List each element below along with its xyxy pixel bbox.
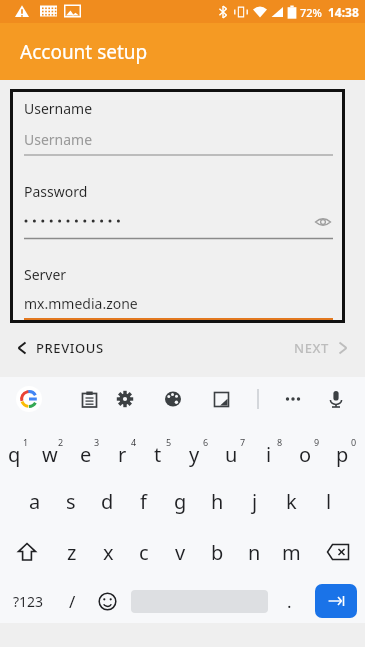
staticText: o xyxy=(299,441,312,468)
staticText: u xyxy=(225,441,238,468)
staticText: 8 xyxy=(277,436,283,448)
button[interactable]: NEXT xyxy=(290,333,353,363)
button[interactable]: y xyxy=(180,427,217,473)
staticText: z xyxy=(67,539,77,566)
staticText: c xyxy=(139,539,149,566)
staticText: f xyxy=(140,488,147,515)
staticText: q xyxy=(8,441,21,468)
staticText: 0 xyxy=(351,436,357,448)
staticText: PREVIOUS xyxy=(36,339,104,357)
staticText: d xyxy=(101,488,114,515)
button[interactable]: t xyxy=(144,427,180,473)
button[interactable]: n xyxy=(236,529,273,575)
staticText: v xyxy=(175,539,186,566)
button[interactable]: Show password xyxy=(313,213,333,233)
staticText: 2 xyxy=(58,436,64,448)
button[interactable]: d xyxy=(89,478,125,524)
staticText: Username xyxy=(24,99,93,118)
staticText: w xyxy=(42,441,58,468)
button[interactable]: l xyxy=(310,478,347,524)
button[interactable]: p xyxy=(328,427,365,473)
button[interactable]: b xyxy=(199,529,236,575)
staticText: l xyxy=(326,488,332,515)
button[interactable]: Shift xyxy=(0,529,54,575)
button[interactable]: Enter xyxy=(315,584,357,618)
button[interactable]: f xyxy=(125,478,162,524)
button[interactable]: u xyxy=(217,427,254,473)
button[interactable]: . xyxy=(273,579,306,623)
button[interactable]: s xyxy=(53,478,89,524)
button[interactable]: Themes xyxy=(160,386,186,412)
staticText: i xyxy=(266,441,272,468)
button[interactable]: PREVIOUS xyxy=(12,333,108,363)
button[interactable]: i xyxy=(254,427,291,473)
staticText: x xyxy=(103,539,114,566)
staticText: Server xyxy=(24,265,67,284)
button[interactable]: e xyxy=(72,427,108,473)
staticText: t xyxy=(154,441,162,468)
staticText: ?123 xyxy=(13,592,44,611)
staticText: Password xyxy=(24,182,88,201)
staticText: s xyxy=(66,488,76,515)
button[interactable]: Voice input xyxy=(323,386,349,412)
staticText: 3 xyxy=(94,436,100,448)
button[interactable]: Google xyxy=(16,386,42,412)
button[interactable]: a xyxy=(17,478,53,524)
staticText: g xyxy=(174,488,187,515)
button[interactable]: k xyxy=(273,478,310,524)
staticText: . xyxy=(287,590,292,613)
button[interactable]: More options xyxy=(280,386,306,412)
button[interactable]: o xyxy=(291,427,328,473)
button[interactable]: Settings xyxy=(112,386,138,412)
button[interactable]: Backspace xyxy=(310,529,365,575)
button[interactable]: m xyxy=(273,529,310,575)
button[interactable]: j xyxy=(236,478,273,524)
staticText: m xyxy=(282,539,301,566)
staticText: mx.mmedia.zone xyxy=(24,294,138,313)
staticText: Username xyxy=(24,130,93,149)
button[interactable]: ?123 xyxy=(0,579,56,623)
staticText: a xyxy=(29,488,41,515)
button[interactable]: x xyxy=(90,529,126,575)
staticText: y xyxy=(189,441,200,468)
staticText: e xyxy=(80,441,92,468)
staticText: 4 xyxy=(131,436,137,448)
staticText: / xyxy=(69,590,76,613)
staticText: 7 xyxy=(240,436,246,448)
button[interactable]: Stickers xyxy=(208,386,234,412)
button[interactable]: Clipboard xyxy=(76,386,102,412)
button[interactable]: mx.mmedia.zone xyxy=(24,294,333,320)
button[interactable]: / xyxy=(56,579,89,623)
button[interactable]: v xyxy=(162,529,199,575)
button[interactable]: r xyxy=(108,427,144,473)
button[interactable]: c xyxy=(126,529,162,575)
staticText: 9 xyxy=(314,436,320,448)
button[interactable]: Show password xyxy=(24,213,333,239)
button[interactable]: q xyxy=(0,427,36,473)
staticText: b xyxy=(211,539,224,566)
staticText: 6 xyxy=(203,436,209,448)
staticText: k xyxy=(286,488,297,515)
staticText: r xyxy=(118,441,127,468)
button[interactable]: Emoji xyxy=(89,579,126,623)
staticText: 72% xyxy=(300,5,322,20)
button[interactable]: Username xyxy=(24,130,333,156)
button[interactable]: h xyxy=(199,478,236,524)
button[interactable]: z xyxy=(54,529,90,575)
staticText: j xyxy=(252,488,258,515)
staticText: 1 xyxy=(23,436,29,448)
staticText: p xyxy=(336,441,349,468)
staticText: n xyxy=(248,539,261,566)
staticText: NEXT xyxy=(294,339,329,357)
staticText: h xyxy=(211,488,224,515)
staticText: 14:38 xyxy=(328,4,359,20)
button[interactable]: g xyxy=(162,478,199,524)
staticText: 5 xyxy=(166,436,172,448)
button[interactable]: w xyxy=(36,427,72,473)
staticText: Account setup xyxy=(20,39,148,65)
